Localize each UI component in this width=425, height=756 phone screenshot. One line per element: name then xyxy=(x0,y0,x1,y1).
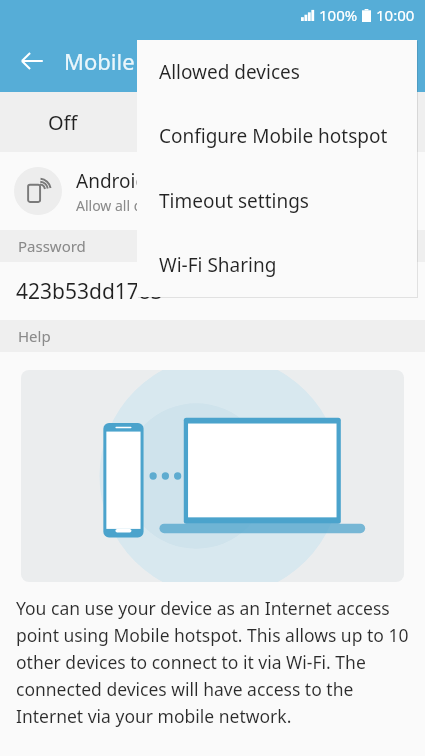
button[interactable]: Wi-Fi Sharing xyxy=(137,233,417,297)
staticText: You can use your device as an Internet a… xyxy=(16,596,409,728)
staticText: Off xyxy=(48,109,78,136)
staticText: Mobile hotspot xyxy=(64,46,221,76)
button[interactable]: Timeout settings xyxy=(137,169,417,233)
staticText: Wi-Fi Sharing xyxy=(159,252,277,278)
button[interactable]: Configure Mobile hotspot xyxy=(137,104,417,168)
staticText: Configure Mobile hotspot xyxy=(159,123,388,149)
staticText: Allowed devices xyxy=(159,59,300,85)
button[interactable]: AndroidAP xyxy=(0,152,425,230)
staticText: Allow all devices xyxy=(76,196,182,215)
staticText: AndroidAP xyxy=(76,168,171,194)
staticText: Timeout settings xyxy=(159,188,309,214)
staticText: Help xyxy=(18,326,51,346)
button[interactable]: Allowed devices xyxy=(137,40,417,104)
button[interactable]: Navigate up xyxy=(8,37,56,85)
staticText: 423b53dd1783 xyxy=(16,277,163,306)
staticText: Password xyxy=(18,236,86,256)
staticText: 100% xyxy=(319,5,358,25)
staticText: 10:00 xyxy=(376,5,415,25)
button[interactable]: 423b53dd1783 xyxy=(0,262,425,320)
button[interactable]: Off xyxy=(0,92,425,152)
